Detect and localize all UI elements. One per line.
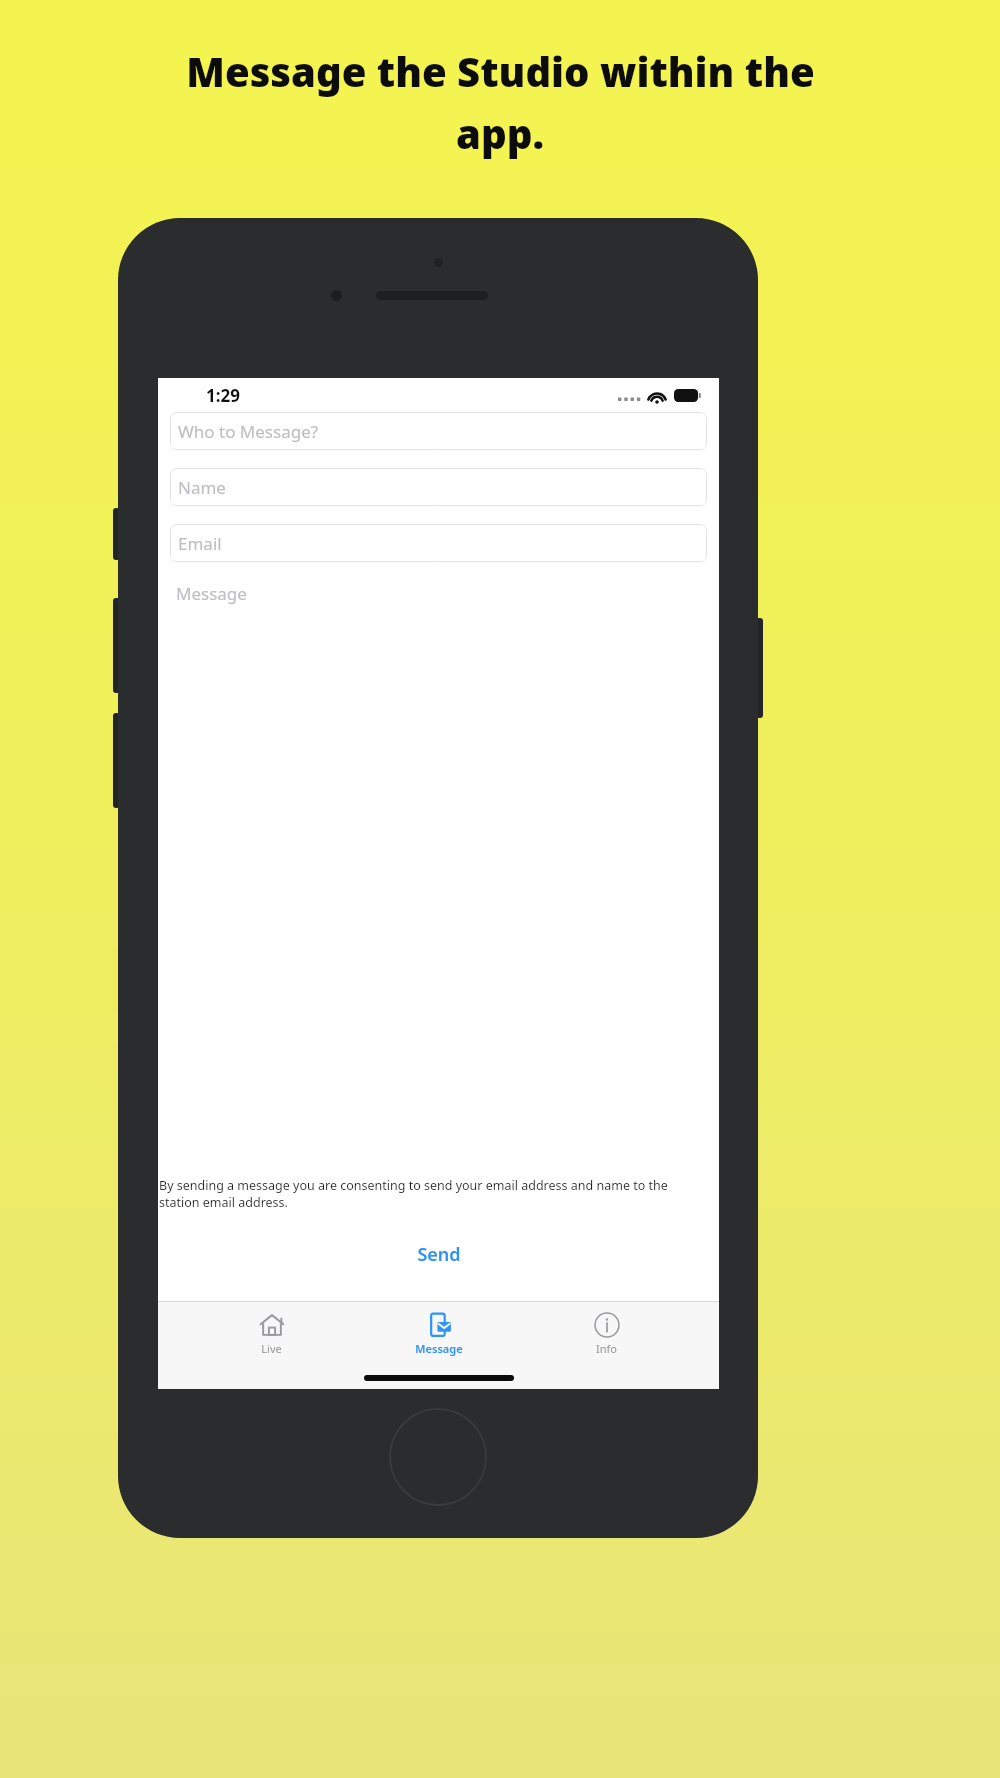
other: Live	[259, 1312, 285, 1338]
staticText: Message	[415, 1341, 463, 1356]
other: Message	[427, 1312, 453, 1338]
staticText: Name	[178, 476, 226, 499]
staticText: Live	[261, 1341, 282, 1356]
button[interactable]: Who to Message?	[170, 412, 707, 450]
button[interactable]: Name	[170, 468, 707, 506]
staticText: Send	[417, 1242, 461, 1267]
staticText: app.	[456, 106, 544, 160]
button[interactable]: Live	[216, 1311, 326, 1356]
button[interactable]: Info	[551, 1311, 661, 1356]
staticText: Info	[596, 1341, 617, 1356]
staticText: Who to Message?	[178, 420, 319, 443]
button[interactable]: Message	[384, 1311, 494, 1356]
staticText: By sending a message you are consenting …	[159, 1177, 705, 1210]
other: Info	[594, 1312, 620, 1338]
staticText: 1:29	[206, 384, 240, 407]
staticText: Message the Studio within the	[186, 44, 815, 98]
button[interactable]: Send	[158, 1242, 719, 1267]
staticText: Email	[178, 532, 222, 555]
button[interactable]: Email	[170, 524, 707, 562]
staticText: Message	[176, 582, 247, 605]
